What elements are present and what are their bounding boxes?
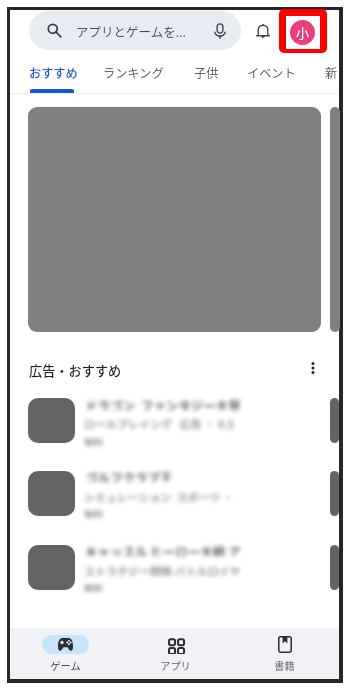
staticText: 無料 xyxy=(84,507,104,518)
staticText: イベント xyxy=(247,64,296,82)
button[interactable] xyxy=(28,107,321,332)
staticText: シミュレーション スポーツ ・4.2 xyxy=(84,489,244,502)
staticText: ゲーム xyxy=(50,658,81,673)
staticText: 無料 xyxy=(84,435,104,446)
staticText: 広告・おすすめ xyxy=(29,361,122,380)
staticText: ゴルフクラブ王 xyxy=(85,468,173,482)
button[interactable]: 書籍 xyxy=(230,628,339,679)
staticText: キャッスル ヒーロー大戦 アクション xyxy=(85,542,245,556)
button[interactable]: ゲーム xyxy=(10,628,120,679)
staticText: おすすめ xyxy=(29,64,78,82)
staticText: 無料 xyxy=(84,581,104,592)
staticText: アプリ xyxy=(160,658,191,673)
staticText: アプリとゲームを... xyxy=(76,22,187,40)
button[interactable]: Account xyxy=(279,9,327,53)
button[interactable] xyxy=(28,471,75,516)
staticText: ロールプレイング 広告 ・ 4.5 xyxy=(84,416,235,429)
staticText: 子供 xyxy=(194,64,219,82)
button[interactable]: おすすめ xyxy=(17,56,89,93)
button[interactable]: アプリ xyxy=(120,628,230,679)
button[interactable]: Voice search xyxy=(210,21,230,41)
button[interactable]: イベント xyxy=(235,56,307,93)
button[interactable] xyxy=(28,398,75,443)
button[interactable]: 子供 xyxy=(170,56,242,93)
staticText: 小 xyxy=(296,23,310,42)
staticText: 新 xyxy=(325,64,338,82)
button[interactable]: アプリとゲームを... xyxy=(29,11,241,50)
staticText: ストラテジー戦略 バトルロイヤル ・ 4.4 xyxy=(84,563,244,576)
button[interactable]: ランキング xyxy=(97,56,169,93)
button[interactable] xyxy=(28,545,75,590)
staticText: ランキング xyxy=(103,64,164,82)
button[interactable]: 新 xyxy=(295,56,350,93)
button[interactable]: More options xyxy=(303,357,323,379)
staticText: ドラゴン ファンタジー大冒険RPG xyxy=(85,396,245,410)
button[interactable]: Notifications xyxy=(253,22,273,42)
staticText: 書籍 xyxy=(274,658,295,673)
